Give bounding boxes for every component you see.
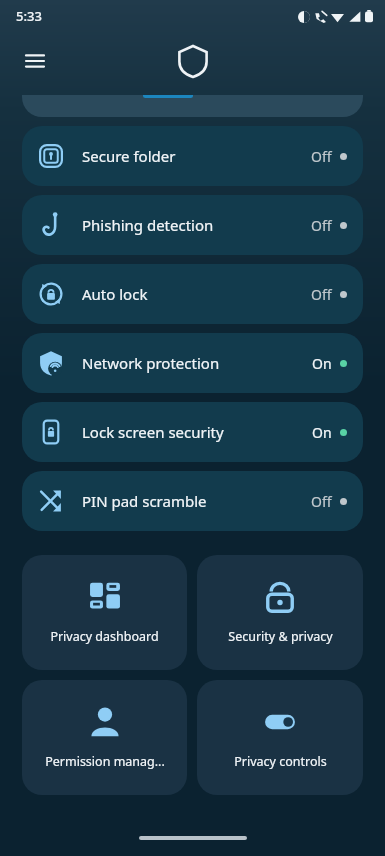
button[interactable]: Menu bbox=[14, 40, 56, 82]
button[interactable]: PIN pad scramble bbox=[22, 471, 363, 531]
staticText: PIN pad scramble bbox=[82, 491, 207, 511]
button[interactable]: Privacy dashboard bbox=[22, 555, 187, 670]
staticText: Permission manag... bbox=[45, 753, 165, 770]
staticText: Lock screen security bbox=[82, 422, 224, 442]
staticText: Privacy controls bbox=[234, 753, 327, 770]
staticText: Privacy dashboard bbox=[50, 628, 159, 645]
staticText: Network protection bbox=[82, 353, 220, 373]
staticText: Off bbox=[311, 285, 332, 304]
staticText: On bbox=[312, 354, 332, 373]
staticText: Off bbox=[311, 147, 332, 166]
staticText: Auto lock bbox=[82, 284, 148, 304]
staticText: 5:33 bbox=[16, 7, 42, 25]
staticText: Security & privacy bbox=[228, 628, 333, 645]
button[interactable]: Secure folder bbox=[22, 126, 363, 186]
staticText: Phishing detection bbox=[82, 215, 214, 235]
button[interactable]: Auto lock bbox=[22, 264, 363, 324]
staticText: Secure folder bbox=[82, 146, 176, 166]
staticText: Off bbox=[311, 216, 332, 235]
button[interactable]: Network protection bbox=[22, 333, 363, 393]
button[interactable]: Lock screen security bbox=[22, 402, 363, 462]
button[interactable]: Privacy controls bbox=[197, 680, 363, 795]
button[interactable]: Security & privacy bbox=[197, 555, 363, 670]
button[interactable]: Phishing detection bbox=[22, 195, 363, 255]
button[interactable] bbox=[22, 95, 363, 117]
button[interactable]: Permission manag... bbox=[22, 680, 187, 795]
staticText: On bbox=[312, 423, 332, 442]
staticText: Off bbox=[311, 492, 332, 511]
